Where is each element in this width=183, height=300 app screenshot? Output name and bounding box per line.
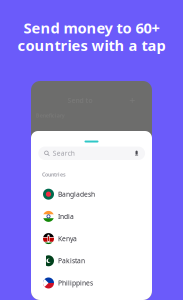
button[interactable]: Pakistan [31, 250, 152, 272]
staticText: Bangladesh [58, 190, 95, 199]
button[interactable]: Bangladesh [31, 183, 152, 205]
staticText: Send money to 60+ [23, 18, 159, 37]
staticText: India [58, 212, 74, 221]
staticText: Send to [67, 96, 92, 105]
staticText: Pakistan [58, 256, 85, 265]
button[interactable]: Philippines [31, 272, 152, 294]
staticText: Countries [42, 171, 66, 178]
staticText: Search [53, 149, 75, 158]
button[interactable]: Kenya [31, 227, 152, 250]
staticText: Philippines [58, 279, 93, 287]
button[interactable]: India [31, 205, 152, 227]
staticText: countries with a tap [17, 35, 165, 55]
staticText: Kenya [58, 234, 77, 243]
